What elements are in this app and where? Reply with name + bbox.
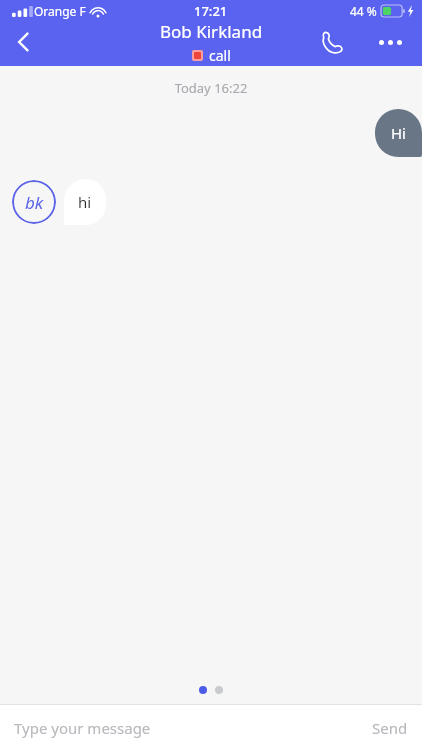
staticText: Today 16:22	[0, 79, 422, 97]
staticText: hi	[78, 192, 92, 212]
staticText: call	[209, 46, 231, 65]
button[interactable]: Back	[0, 18, 48, 66]
staticText: Orange F	[34, 3, 86, 19]
button[interactable]: bk	[12, 180, 56, 224]
staticText: 44 %	[350, 3, 377, 19]
staticText: bk	[25, 191, 44, 214]
staticText: 17:21	[194, 2, 228, 20]
button[interactable]: Type your message	[14, 718, 360, 738]
button[interactable]: Page 1	[199, 686, 207, 694]
button[interactable]: Call	[310, 20, 354, 64]
button[interactable]: Send	[360, 718, 408, 738]
button[interactable]: Page 2	[215, 686, 223, 694]
button[interactable]: More options	[368, 20, 412, 64]
button[interactable]: Hi	[375, 109, 422, 157]
staticText: Hi	[391, 123, 406, 143]
staticText: Bob Kirkland	[160, 20, 263, 43]
button[interactable]: Bob Kirkland	[160, 20, 263, 65]
button[interactable]: hi	[64, 179, 106, 225]
staticText: Send	[372, 718, 408, 738]
staticText: Type your message	[14, 718, 151, 738]
